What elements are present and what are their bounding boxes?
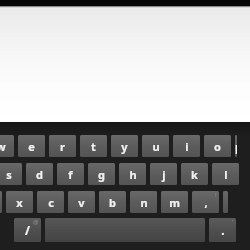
button[interactable]: i bbox=[173, 135, 200, 157]
button[interactable]: c bbox=[37, 191, 64, 213]
staticText: i bbox=[185, 139, 189, 154]
button[interactable] bbox=[0, 6, 250, 122]
staticText: k bbox=[191, 167, 198, 182]
button[interactable]: r bbox=[49, 135, 76, 157]
button[interactable]: t bbox=[80, 135, 107, 157]
staticText: / bbox=[25, 222, 30, 238]
button[interactable]: p bbox=[235, 135, 237, 157]
button[interactable]: d bbox=[26, 163, 53, 185]
staticText: r bbox=[60, 139, 65, 154]
button[interactable]: m bbox=[161, 191, 188, 213]
staticText: ! bbox=[215, 191, 217, 199]
button[interactable]: Backspace bbox=[223, 191, 228, 213]
staticText: y bbox=[121, 139, 128, 154]
staticText: l bbox=[224, 167, 228, 182]
button[interactable]: , bbox=[192, 191, 219, 213]
staticText: j bbox=[162, 167, 166, 182]
staticText: d bbox=[36, 167, 43, 182]
button[interactable]: y bbox=[111, 135, 138, 157]
button[interactable]: l bbox=[212, 163, 239, 185]
button[interactable]: s bbox=[0, 163, 22, 185]
staticText: ' bbox=[232, 218, 234, 226]
staticText: , bbox=[204, 195, 208, 210]
staticText: g bbox=[98, 167, 105, 182]
staticText: s bbox=[6, 167, 12, 182]
staticText: x bbox=[16, 195, 23, 210]
button[interactable]: k bbox=[181, 163, 208, 185]
button[interactable]: Shift bbox=[0, 191, 2, 213]
staticText: n bbox=[140, 195, 148, 210]
staticText: u bbox=[152, 139, 160, 154]
staticText: o bbox=[214, 139, 221, 154]
staticText: e bbox=[28, 139, 35, 154]
staticText: p bbox=[235, 139, 237, 154]
staticText: h bbox=[129, 167, 137, 182]
button[interactable]: o bbox=[204, 135, 231, 157]
button[interactable]: n bbox=[130, 191, 157, 213]
button[interactable]: x bbox=[6, 191, 33, 213]
button[interactable]: v bbox=[68, 191, 95, 213]
button[interactable]: h bbox=[119, 163, 146, 185]
button[interactable]: u bbox=[142, 135, 169, 157]
button[interactable]: w bbox=[0, 135, 14, 157]
staticText: v bbox=[78, 195, 85, 210]
button[interactable]: g bbox=[88, 163, 115, 185]
staticText: c bbox=[48, 195, 54, 210]
button[interactable]: e bbox=[18, 135, 45, 157]
button[interactable]: Space bbox=[45, 218, 205, 242]
button[interactable]: f bbox=[57, 163, 84, 185]
staticText: f bbox=[68, 167, 73, 182]
staticText: m bbox=[169, 195, 180, 210]
staticText: w bbox=[0, 139, 6, 154]
button[interactable]: / bbox=[14, 218, 41, 242]
staticText: @ bbox=[33, 218, 39, 226]
staticText: . bbox=[221, 222, 225, 238]
button[interactable]: . bbox=[209, 218, 236, 242]
button[interactable]: j bbox=[150, 163, 177, 185]
button[interactable]: b bbox=[99, 191, 126, 213]
staticText: t bbox=[91, 139, 96, 154]
staticText: b bbox=[109, 195, 116, 210]
